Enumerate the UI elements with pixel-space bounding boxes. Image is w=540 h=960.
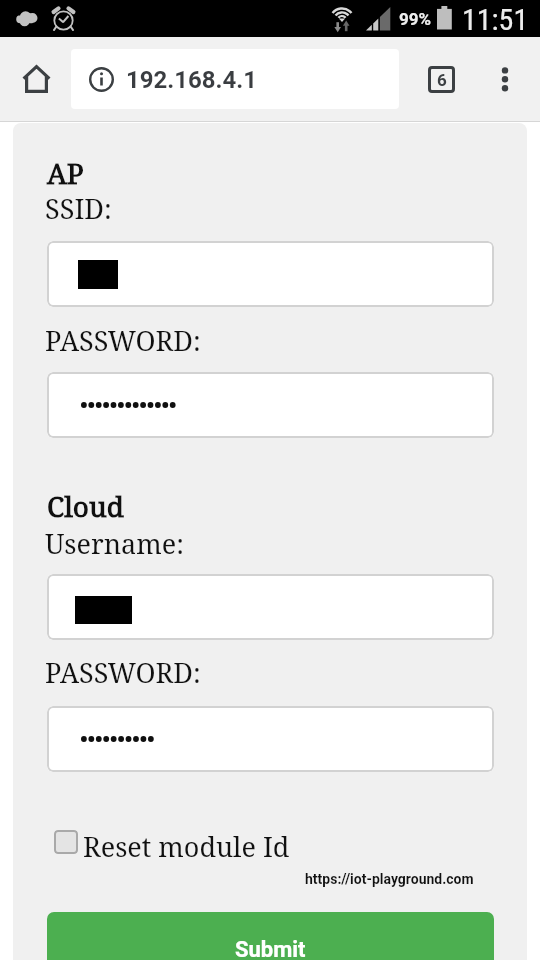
staticText: 6 bbox=[437, 70, 447, 90]
staticText: Username: bbox=[45, 525, 184, 562]
staticText: 11:51 bbox=[462, 2, 529, 37]
button[interactable]: Submit bbox=[47, 912, 494, 960]
button[interactable] bbox=[47, 706, 494, 772]
button[interactable]: Home bbox=[7, 50, 65, 108]
button[interactable]: More options bbox=[479, 53, 531, 105]
button[interactable]: Tabs bbox=[415, 53, 467, 105]
staticText: Cloud bbox=[47, 487, 125, 525]
button[interactable]: 192.168.4.1 bbox=[71, 49, 399, 109]
button[interactable] bbox=[47, 241, 494, 307]
staticText: SSID: bbox=[45, 190, 112, 227]
staticText: 99% bbox=[399, 9, 432, 29]
button[interactable] bbox=[47, 372, 494, 438]
staticText: AP bbox=[47, 154, 84, 192]
button[interactable]: Reset module Id bbox=[50, 826, 300, 860]
staticText: PASSWORD: bbox=[45, 654, 201, 691]
staticText: PASSWORD: bbox=[45, 322, 201, 359]
staticText: https://iot-playground.com bbox=[305, 871, 474, 887]
staticText: Reset module Id bbox=[83, 828, 290, 862]
staticText: 192.168.4.1 bbox=[126, 66, 258, 94]
button[interactable] bbox=[47, 574, 494, 640]
staticText: Submit bbox=[235, 937, 306, 960]
